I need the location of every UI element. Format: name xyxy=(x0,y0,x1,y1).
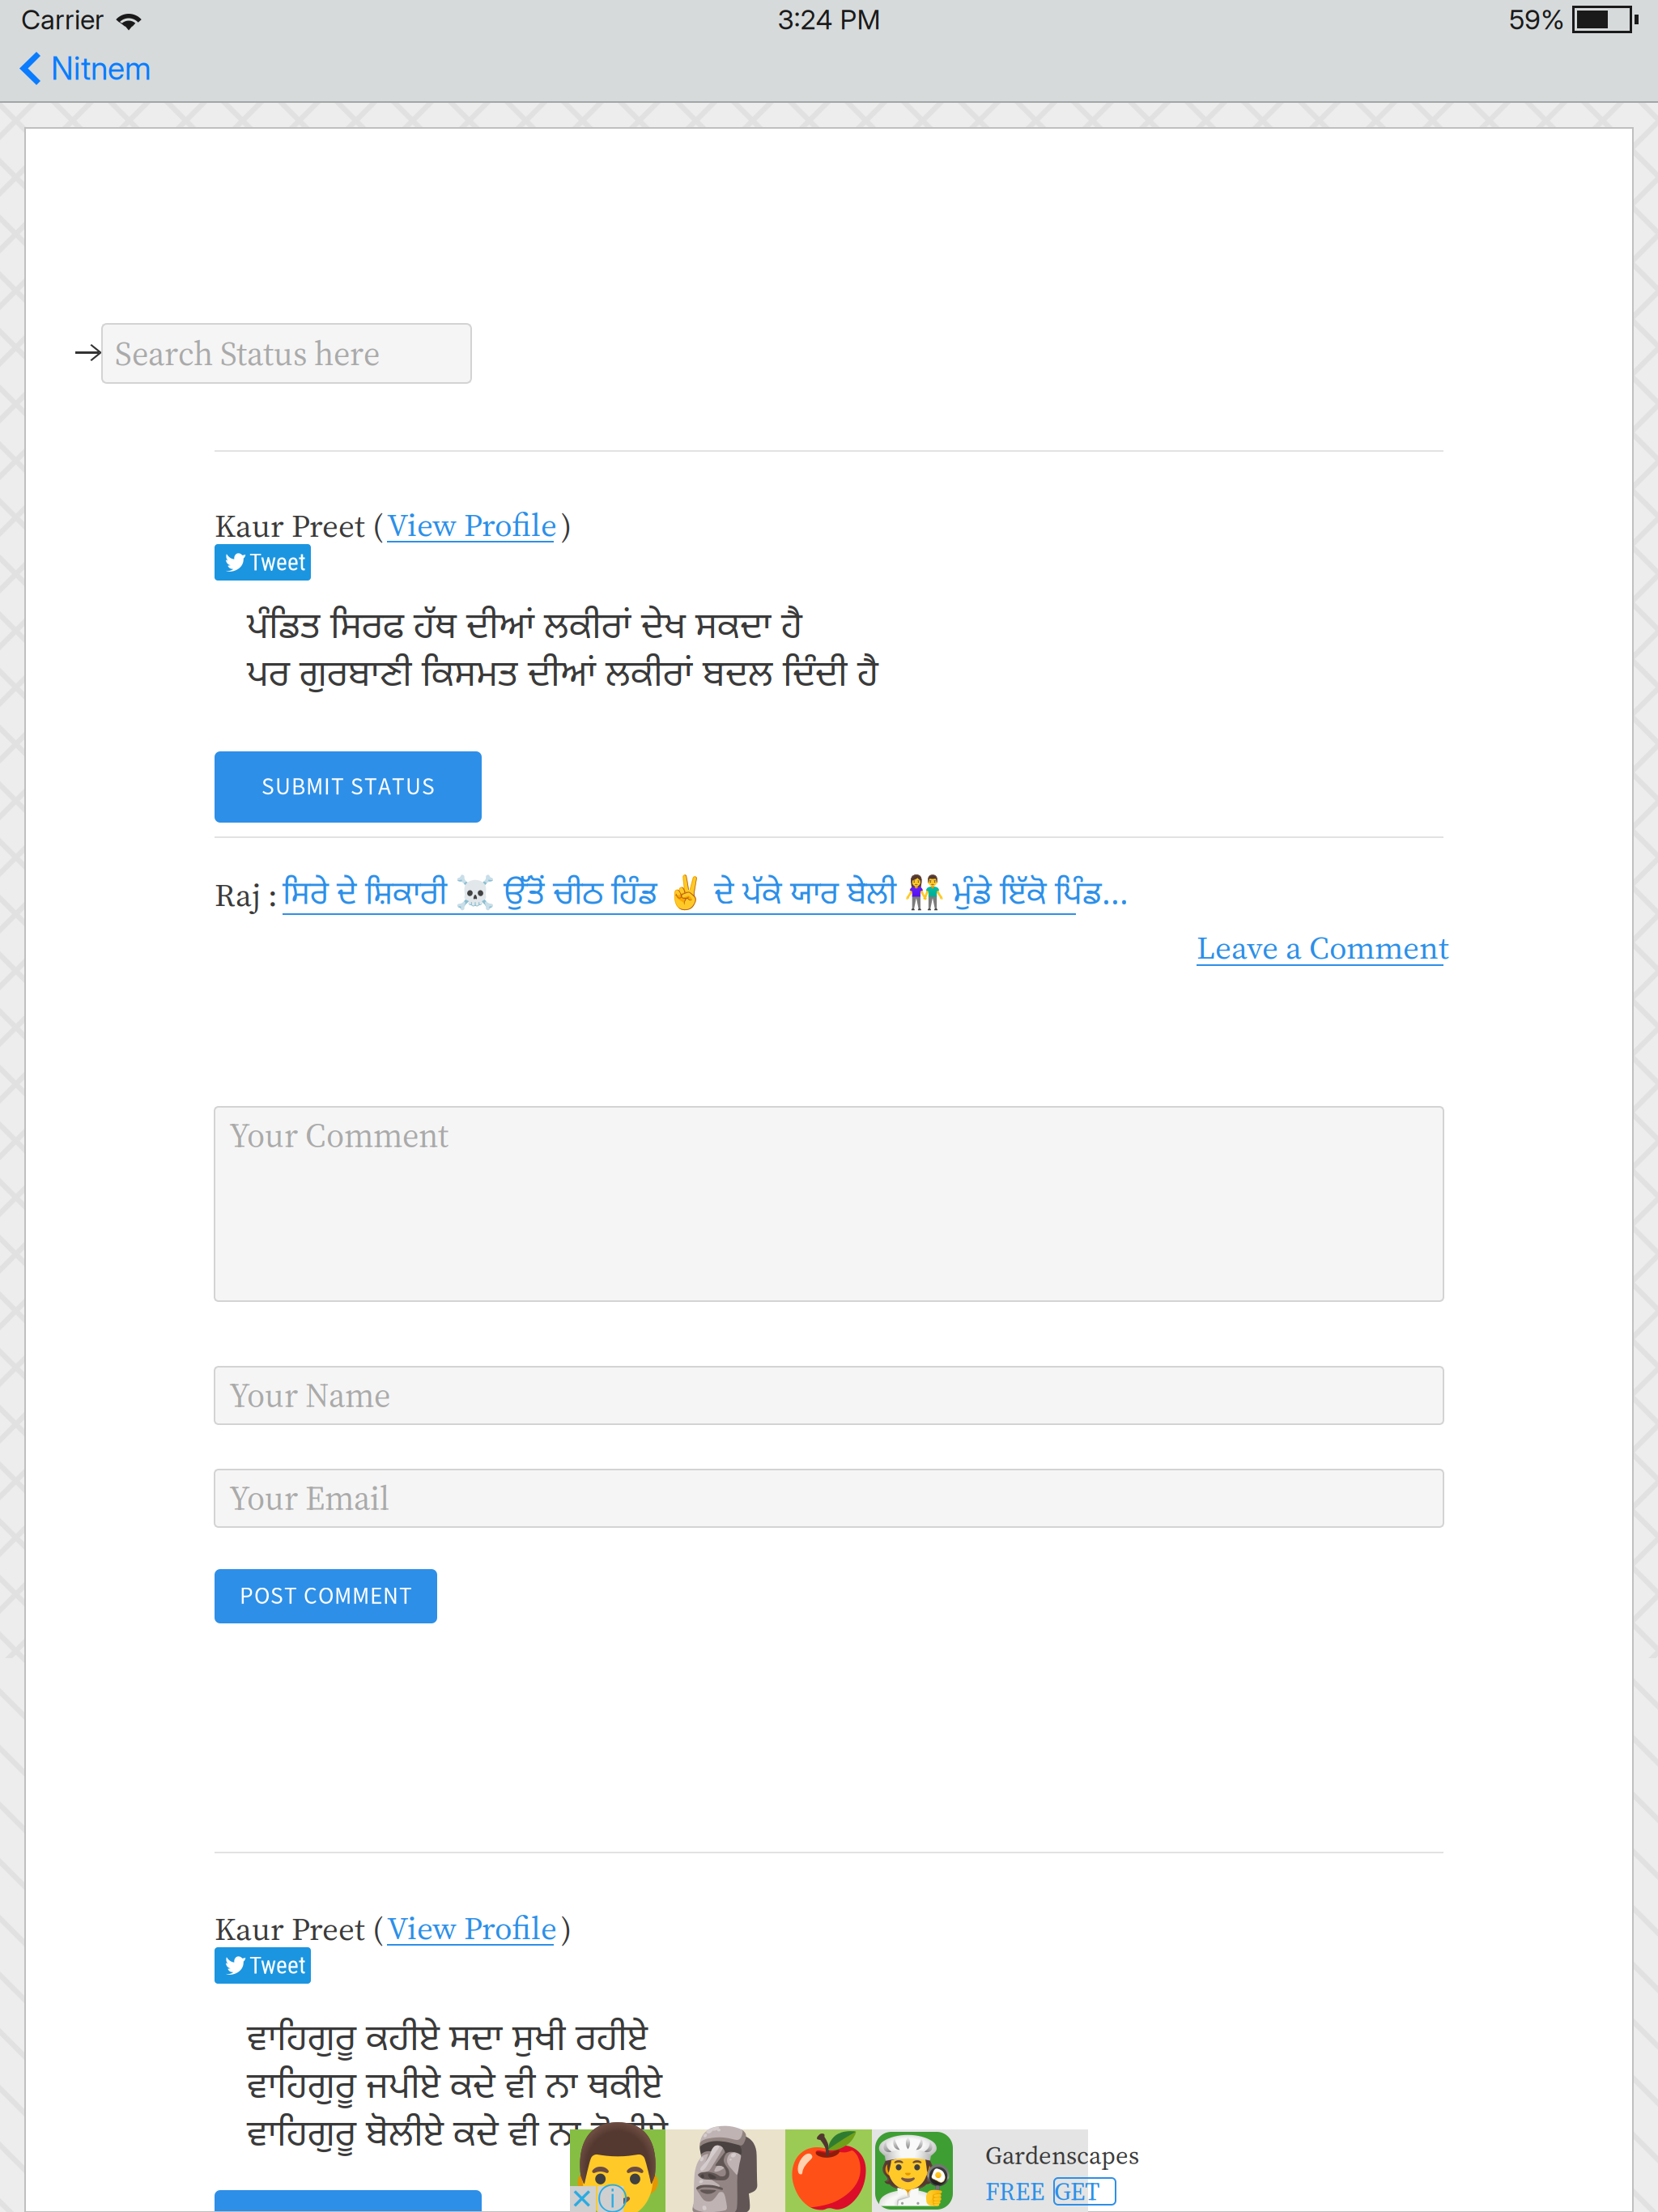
staticText: Kaur Preet ( xyxy=(215,503,390,548)
staticText: View Profile xyxy=(387,502,557,547)
staticText: Leave a Comment xyxy=(1197,925,1449,969)
staticText: ਵਾਹਿਗੁਰੂ ਜਪੀਏ ਕਦੇ ਵੀ ਨਾ ਥਕੀਏ xyxy=(247,2065,662,2113)
staticText: FREE xyxy=(985,2174,1044,2208)
button[interactable]: S U B M I T S T A T U S xyxy=(215,751,482,823)
button[interactable]: Your Email xyxy=(215,1470,1443,1527)
staticText: 🍎 xyxy=(784,2129,873,2212)
button[interactable]: 🧑‍🍳 xyxy=(872,2129,1088,2212)
staticText: Tweet xyxy=(249,1952,306,1979)
staticText: Your Email xyxy=(229,1475,389,1521)
staticText: GET xyxy=(1054,2174,1099,2208)
staticText: ਵਾਹਿਗੁਰੂ ਕਹੀਏ ਸਦਾ ਸੁਖੀ ਰਹੀਏ xyxy=(247,2017,648,2065)
staticText: ਪਰ ਗੁਰਬਾਣੀ ਕਿਸਮਤ ਦੀਆਂ ਲਕੀਰਾਂ ਬਦਲ ਦਿੰਦੀ ਹ… xyxy=(247,653,878,701)
staticText: Carrier xyxy=(21,3,104,36)
staticText: ⓘ xyxy=(597,2180,627,2212)
staticText: 👨 xyxy=(563,2119,673,2212)
button[interactable]: Leave a Comment xyxy=(1197,930,1443,966)
staticText: Nitnem xyxy=(51,49,151,87)
staticText: ) xyxy=(554,1906,572,1951)
button[interactable]: ਸਿਰੇ ਦੇ ਸ਼ਿਕਾਰੀ ☠️ ਉੱਤੋਂ ਚੀਠ ਹਿੰਡ ✌️ ਦੇ … xyxy=(283,878,1076,915)
button[interactable]: S U B M I T S T A T U S xyxy=(215,2190,482,2212)
button[interactable]: Nitnem xyxy=(0,39,275,103)
button[interactable]: Your Name xyxy=(215,1367,1443,1424)
staticText: ਵਾਹਿਗੁਰੂ ਬੋਲੀਏ ਕਦੇ ਵੀ ਨਾ ਡੋਲੀਏ xyxy=(247,2113,668,2161)
staticText: 🗿 xyxy=(674,2123,776,2212)
staticText: ਸਿਰੇ ਦੇ ਸ਼ਿਕਾਰੀ ☠️ ਉੱਤੋਂ ਚੀਠ ਹਿੰਡ ✌️ ਦੇ … xyxy=(283,874,1129,917)
staticText: Search Status here xyxy=(115,331,380,376)
staticText: ) xyxy=(554,503,572,548)
staticText: P O S T C O M M E N T xyxy=(240,1579,412,1613)
button[interactable]: Search Status here xyxy=(102,324,471,383)
staticText: 59% xyxy=(1509,3,1565,36)
staticText: Raj : xyxy=(215,872,285,917)
button[interactable]: Close ad xyxy=(570,2186,596,2212)
staticText: View Profile xyxy=(387,1906,557,1950)
staticText: S U B M I T S T A T U S xyxy=(261,2209,435,2212)
staticText: S U B M I T S T A T U S xyxy=(261,770,435,804)
button[interactable]: View Profile xyxy=(387,508,554,542)
button[interactable]: Ad information xyxy=(597,2186,623,2212)
button[interactable]: Tweet xyxy=(215,544,311,581)
staticText: Gardenscapes xyxy=(985,2138,1139,2172)
staticText: 3:24 PM xyxy=(778,3,880,36)
staticText: ✕ xyxy=(570,2183,593,2212)
button[interactable]: Your Comment xyxy=(215,1107,1443,1301)
button[interactable]: Tweet xyxy=(215,1947,311,1984)
staticText: Your Comment xyxy=(229,1112,449,1158)
button[interactable]: View Profile xyxy=(387,1912,554,1946)
staticText: Tweet xyxy=(249,548,306,576)
staticText: 🧑‍🍳 xyxy=(874,2133,954,2209)
button[interactable]: P O S T C O M M E N T xyxy=(215,1569,437,1623)
staticText: ਪੰਡਿਤ ਸਿਰਫ ਹੱਥ ਦੀਆਂ ਲਕੀਰਾਂ ਦੇਖ ਸਕਦਾ ਹੈ xyxy=(247,605,802,653)
staticText: Kaur Preet ( xyxy=(215,1906,390,1951)
staticText: Your Name xyxy=(229,1372,390,1418)
